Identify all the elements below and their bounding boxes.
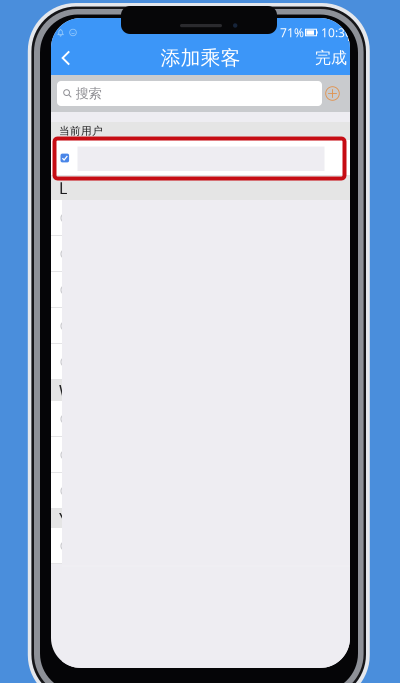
button[interactable]: Back: [51, 41, 81, 75]
staticText: 完成: [315, 48, 347, 68]
button[interactable]: [51, 344, 350, 380]
button[interactable]: [51, 236, 350, 272]
staticText: 10:30: [321, 24, 352, 40]
button[interactable]: Add new passenger: [322, 81, 343, 106]
staticText: Y: [59, 508, 68, 529]
button[interactable]: [51, 401, 350, 437]
staticText: L: [59, 177, 67, 199]
button[interactable]: [51, 528, 350, 564]
staticText: 搜索: [75, 85, 101, 102]
staticText: 71%: [280, 24, 304, 40]
button[interactable]: [51, 308, 350, 344]
staticText: 添加乘客: [160, 46, 240, 70]
staticText: W: [59, 380, 74, 401]
button[interactable]: [51, 140, 350, 176]
staticText: 当前用户: [59, 124, 103, 137]
button[interactable]: [51, 437, 350, 473]
button[interactable]: [51, 473, 350, 509]
button[interactable]: 完成: [312, 41, 350, 75]
button[interactable]: [51, 200, 350, 236]
button[interactable]: [51, 272, 350, 308]
